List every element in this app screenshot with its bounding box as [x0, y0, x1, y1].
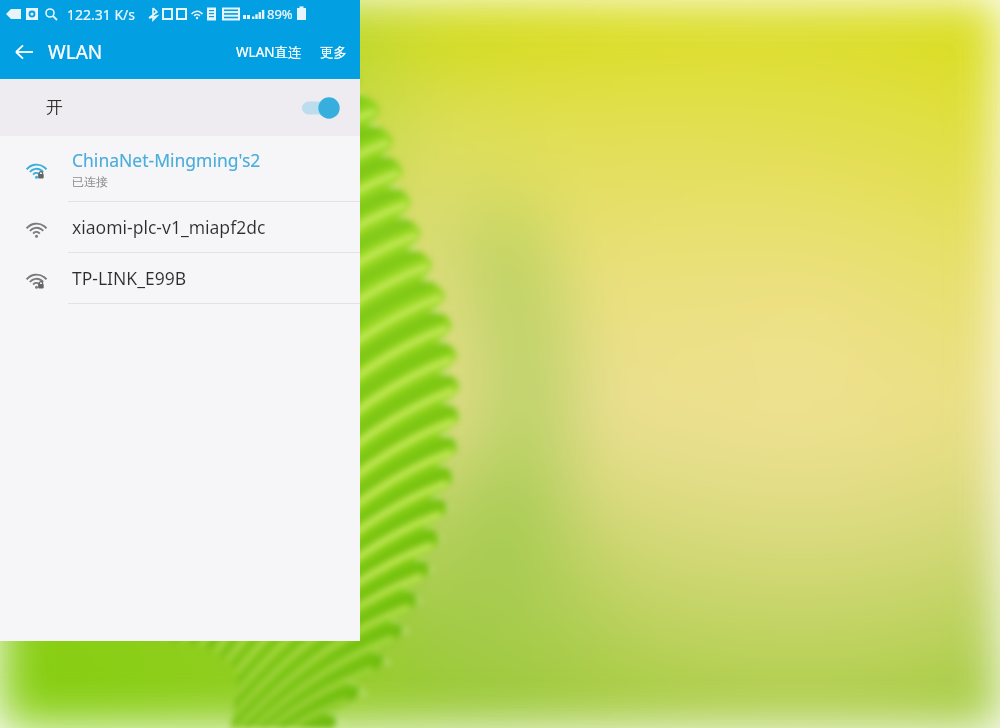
staticText: 122.31 K/s — [67, 5, 136, 24]
staticText: 已连接 — [72, 174, 108, 189]
staticText: xiaomi-plc-v1_miapf2dc — [72, 215, 266, 239]
button[interactable]: 开 — [0, 79, 360, 136]
button[interactable]: Back — [0, 28, 48, 76]
button[interactable]: WLAN直连 — [227, 43, 311, 61]
staticText: ChinaNet-Mingming's2 — [72, 148, 261, 172]
button[interactable]: WLAN on/off switch — [302, 96, 340, 120]
button[interactable]: TP-LINK_E99B — [0, 253, 360, 303]
staticText: 更多 — [320, 44, 347, 61]
button[interactable]: 更多 — [311, 44, 360, 61]
staticText: WLAN直连 — [236, 43, 302, 61]
staticText: 开 — [46, 97, 63, 118]
button[interactable]: ChinaNet-Mingming's2 — [0, 136, 360, 201]
button[interactable]: xiaomi-plc-v1_miapf2dc — [0, 202, 360, 252]
staticText: 89% — [267, 5, 293, 23]
staticText: WLAN — [48, 39, 103, 65]
staticText: TP-LINK_E99B — [72, 266, 187, 290]
